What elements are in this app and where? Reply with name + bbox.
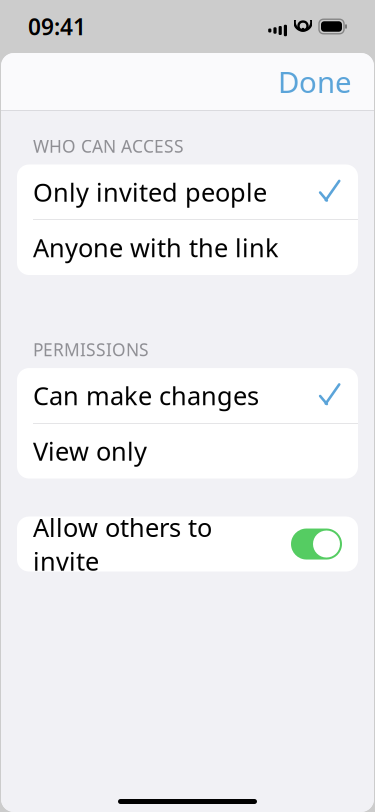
staticText: Only invited people: [33, 175, 267, 209]
button[interactable]: Done: [262, 52, 368, 111]
staticText: Done: [278, 62, 352, 101]
staticText: 09:41: [28, 11, 86, 41]
staticText: Can make changes: [33, 379, 259, 412]
button[interactable]: View only: [17, 423, 358, 478]
staticText: WHO CAN ACCESS: [33, 134, 184, 157]
staticText: PERMISSIONS: [33, 338, 149, 361]
button[interactable]: Can make changes: [17, 368, 358, 423]
staticText: Allow others to invite: [33, 510, 212, 578]
staticText: View only: [33, 434, 147, 468]
staticText: Anyone with the link: [33, 231, 279, 264]
button[interactable]: Allow others to invite: [291, 528, 342, 559]
button[interactable]: Only invited people: [17, 164, 358, 219]
button[interactable]: Anyone with the link: [17, 220, 358, 275]
